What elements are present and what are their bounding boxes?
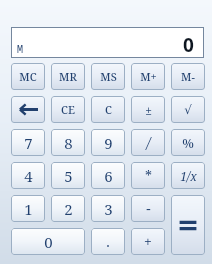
button[interactable]: 5 [51, 162, 85, 189]
button[interactable]: √ [171, 96, 205, 123]
staticText: √ [184, 103, 192, 117]
button[interactable]: ± [131, 96, 165, 123]
staticText: * [145, 166, 152, 185]
staticText: 9 [104, 133, 113, 153]
staticText: 5 [64, 166, 73, 186]
button[interactable]: M+ [131, 63, 165, 90]
staticText: % [182, 134, 194, 152]
staticText: 0 [44, 232, 53, 252]
button[interactable]: + [131, 228, 165, 255]
button[interactable]: 7 [11, 129, 45, 156]
staticText: 6 [104, 166, 113, 186]
staticText: / [146, 133, 151, 152]
button[interactable]: 9 [91, 129, 125, 156]
button[interactable]: 6 [91, 162, 125, 189]
staticText: M- [181, 69, 195, 84]
button[interactable]: Backspace [11, 96, 45, 123]
staticText: CE [61, 102, 75, 117]
button[interactable]: C [91, 96, 125, 123]
staticText: 0 [183, 32, 194, 58]
button[interactable]: 1/x [171, 162, 205, 189]
staticText: 2 [64, 199, 73, 219]
button[interactable]: 4 [11, 162, 45, 189]
staticText: M+ [140, 69, 157, 84]
staticText: + [144, 232, 152, 251]
button[interactable]: 0 [11, 228, 85, 255]
button[interactable]: Equals [171, 195, 205, 255]
button[interactable]: 1 [11, 195, 45, 222]
button[interactable]: M- [171, 63, 205, 90]
staticText: M [17, 42, 23, 56]
button[interactable]: MS [91, 63, 125, 90]
staticText: . [106, 232, 110, 251]
staticText: MS [100, 69, 117, 84]
staticText: 1/x [180, 168, 197, 184]
button[interactable]: 8 [51, 129, 85, 156]
staticText: 7 [24, 133, 33, 153]
staticText: ± [145, 102, 152, 118]
button[interactable]: - [131, 195, 165, 222]
button[interactable]: CE [51, 96, 85, 123]
button[interactable]: MR [51, 63, 85, 90]
staticText: C [105, 102, 112, 117]
staticText: MC [19, 69, 37, 84]
button[interactable]: % [171, 129, 205, 156]
staticText: 3 [104, 199, 113, 219]
staticText: - [146, 199, 151, 218]
button[interactable]: 3 [91, 195, 125, 222]
button[interactable]: 2 [51, 195, 85, 222]
button[interactable]: . [91, 228, 125, 255]
staticText: MR [59, 69, 77, 84]
staticText: 1 [24, 199, 33, 219]
staticText: 4 [24, 166, 33, 186]
staticText: 8 [64, 133, 73, 153]
button[interactable]: MC [11, 63, 45, 90]
button[interactable]: / [131, 129, 165, 156]
button[interactable]: * [131, 162, 165, 189]
